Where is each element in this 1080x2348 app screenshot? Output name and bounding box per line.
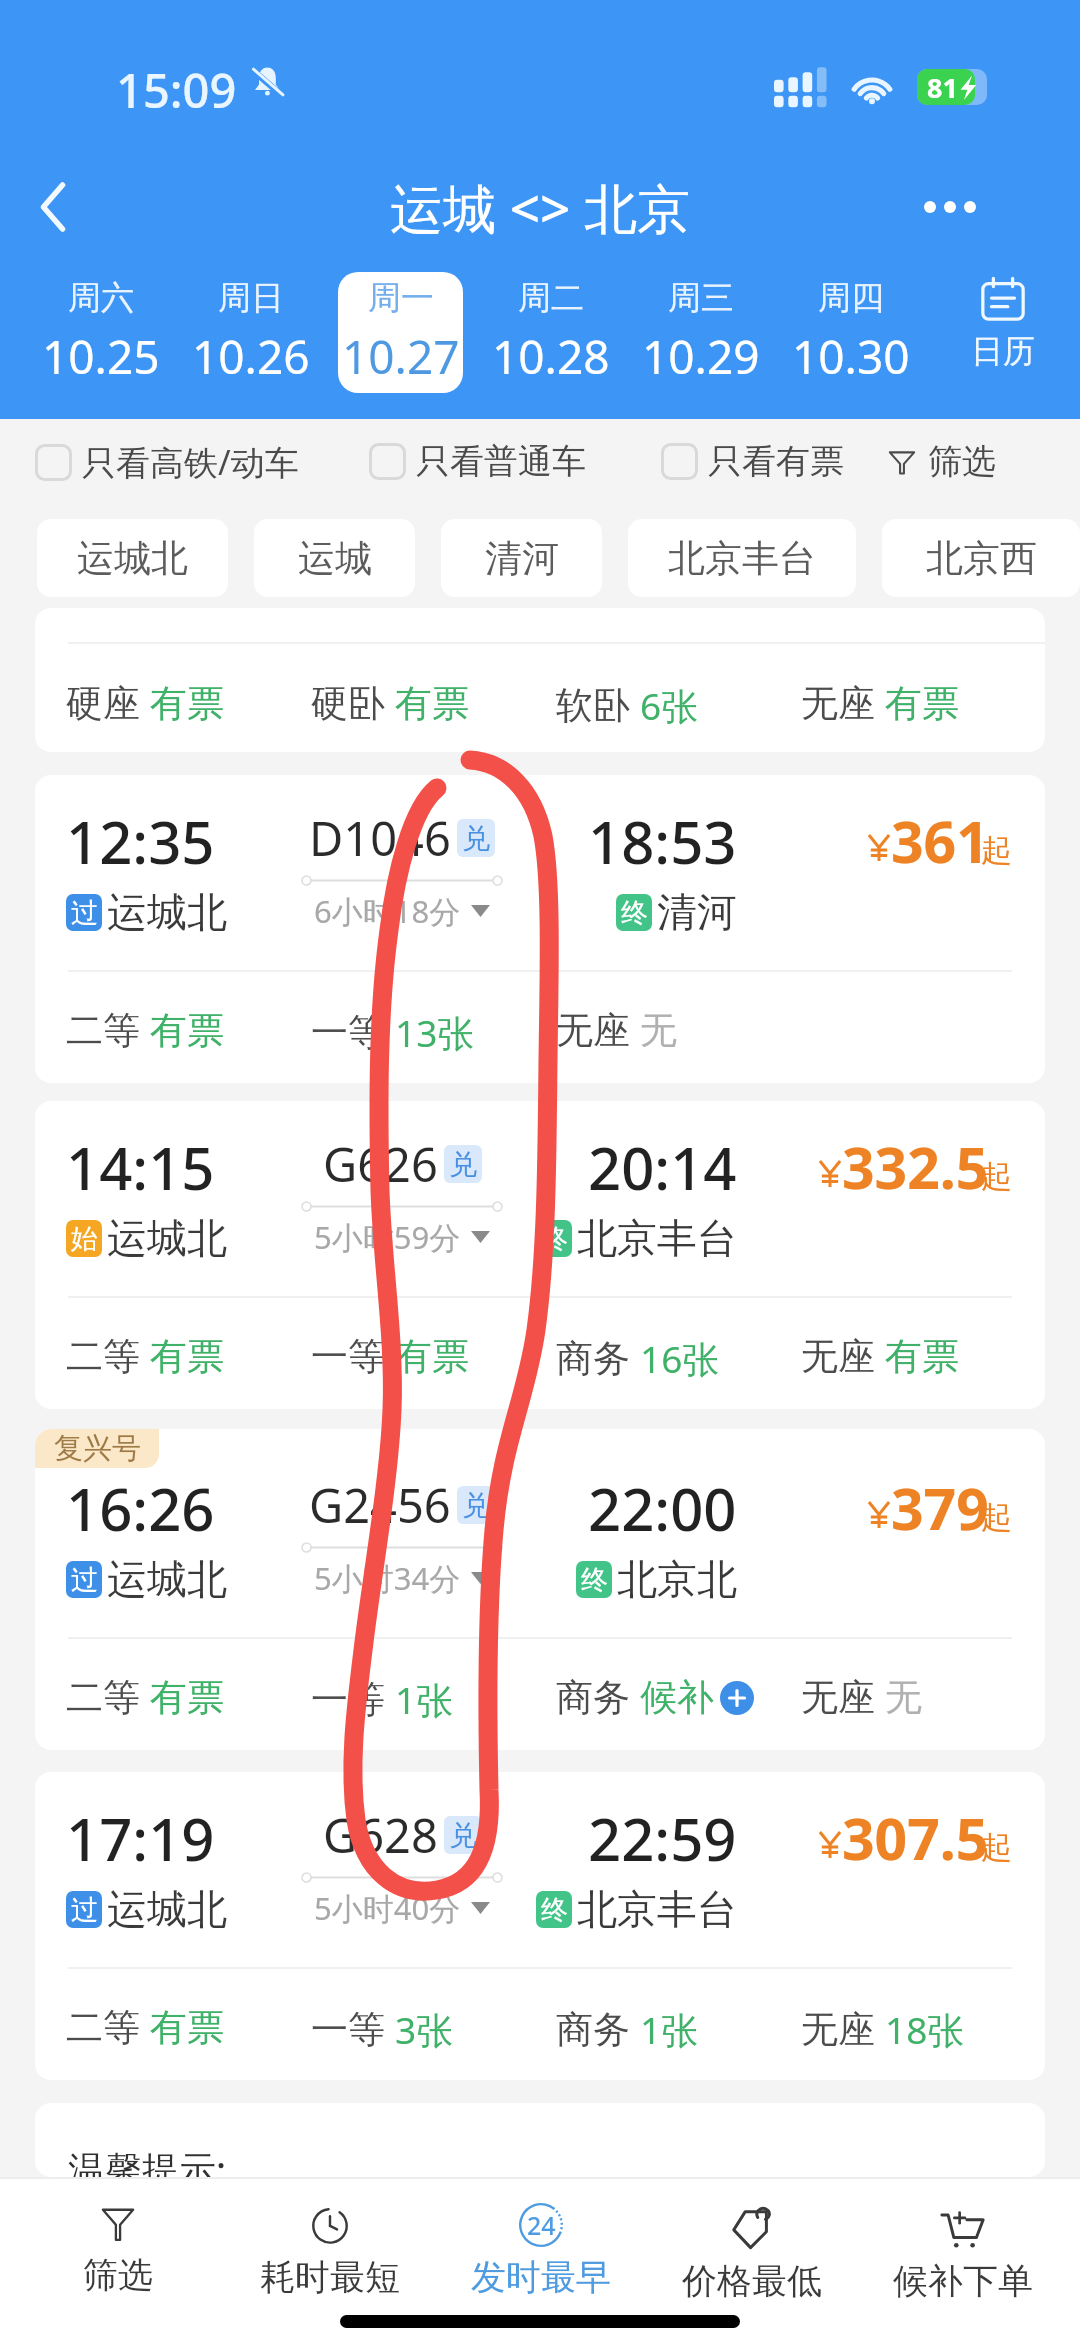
staticText: 起 [981, 831, 1012, 870]
button[interactable]: 耗时最短 [224, 2179, 435, 2303]
staticText: 候补下单 [893, 2259, 1033, 2303]
button[interactable]: 硬座 [35, 608, 1045, 752]
staticText: 无座 [801, 1333, 875, 1380]
staticText: 温馨提示: [68, 2143, 227, 2177]
button[interactable]: 周三 [638, 272, 763, 393]
staticText: 有票 [150, 1007, 224, 1054]
staticText: 终 [621, 896, 648, 930]
staticText: 运城北 [107, 1554, 227, 1604]
button[interactable]: 筛选 [886, 440, 996, 483]
staticText: 终 [541, 1222, 568, 1256]
staticText: 10.26 [192, 325, 310, 388]
staticText: 只看高铁/动车 [82, 439, 299, 485]
staticText: 周四 [818, 277, 884, 319]
button[interactable]: 周日 [188, 272, 313, 393]
staticText: 81 [927, 69, 958, 105]
staticText: 6小时18分 [314, 890, 461, 932]
staticText: 无座 [801, 2006, 875, 2053]
staticText: 清河 [657, 887, 737, 937]
button[interactable]: 12:35 [35, 775, 1045, 1083]
staticText: 发时最早 [471, 2255, 611, 2299]
staticText: 18:53 [588, 802, 737, 881]
staticText: 一等 [311, 2006, 385, 2053]
staticText: 只看普通车 [416, 440, 586, 483]
staticText: 运城 <> 北京 [390, 171, 691, 243]
staticText: 1张 [395, 1674, 454, 1725]
staticText: 15:09 [116, 58, 237, 122]
button[interactable]: 只看普通车 [369, 440, 586, 483]
staticText: 只看有票 [708, 440, 844, 483]
button[interactable]: 北京丰台 [628, 519, 856, 597]
staticText: 12:35 [66, 802, 215, 881]
staticText: 商务 [556, 1335, 630, 1382]
button[interactable]: 复兴号 [35, 1429, 1045, 1750]
button[interactable]: 周一 [338, 272, 463, 393]
staticText: 清河 [485, 535, 559, 582]
staticText: 兑 [449, 1147, 477, 1182]
staticText: 3张 [395, 2004, 454, 2055]
staticText: 无 [885, 1674, 922, 1721]
staticText: 361 [891, 802, 989, 880]
staticText: 起 [981, 1157, 1012, 1196]
staticText: 14:15 [66, 1128, 215, 1207]
staticText: 10.28 [492, 325, 610, 388]
staticText: 过 [71, 1893, 98, 1927]
staticText: 一等 [311, 1009, 385, 1056]
staticText: 有票 [885, 1333, 959, 1380]
staticText: 北京丰台 [668, 535, 816, 582]
staticText: 13张 [395, 1007, 475, 1058]
staticText: 有票 [150, 2004, 224, 2051]
staticText: 无座 [801, 680, 875, 727]
button[interactable]: 17:19 [35, 1772, 1045, 2080]
button[interactable]: 运城 [254, 519, 415, 597]
button[interactable]: 返回 [12, 164, 98, 250]
button[interactable]: 清河 [441, 519, 602, 597]
staticText: 兑 [462, 821, 490, 856]
button[interactable]: 北京西 [882, 519, 1080, 597]
staticText: 332.5 [842, 1128, 989, 1206]
button[interactable]: 周六 [38, 272, 163, 393]
staticText: 二等 [66, 1007, 140, 1054]
staticText: 16张 [640, 1333, 720, 1384]
staticText: G628 [323, 1803, 438, 1867]
staticText: 周二 [518, 277, 584, 319]
staticText: 运城北 [107, 1884, 227, 1934]
staticText: 1张 [640, 2004, 699, 2055]
button[interactable]: 更多 [905, 162, 995, 252]
staticText: 起 [981, 1498, 1012, 1537]
staticText: 二等 [66, 1674, 140, 1721]
staticText: 有票 [395, 1333, 469, 1380]
button[interactable]: 候补下单 [857, 2179, 1068, 2303]
button[interactable]: 价格最低 [646, 2179, 857, 2303]
staticText: 5小时34分 [314, 1557, 461, 1599]
staticText: 16:26 [66, 1469, 215, 1548]
staticText: 过 [71, 896, 98, 930]
staticText: 软卧 [556, 682, 630, 729]
staticText: 5小时59分 [314, 1216, 461, 1258]
staticText: 有票 [150, 1674, 224, 1721]
button[interactable]: 周二 [488, 272, 613, 393]
button[interactable]: 日历 [925, 272, 1080, 419]
staticText: 379 [891, 1469, 989, 1547]
button[interactable]: 周四 [788, 272, 913, 393]
button[interactable]: 只看高铁/动车 [35, 439, 299, 485]
staticText: 无座 [801, 1674, 875, 1721]
staticText: 有票 [885, 680, 959, 727]
staticText: 22:59 [588, 1799, 737, 1878]
staticText: 二等 [66, 2004, 140, 2051]
button[interactable]: 只看有票 [661, 440, 844, 483]
staticText: 耗时最短 [260, 2255, 400, 2299]
button[interactable]: 筛选 [12, 2179, 224, 2303]
staticText: 周三 [668, 277, 734, 319]
button[interactable]: 14:15 [35, 1101, 1045, 1409]
staticText: 兑 [449, 1818, 477, 1853]
staticText: D1046 [309, 806, 451, 870]
staticText: 起 [981, 1828, 1012, 1867]
staticText: 周一 [368, 277, 434, 319]
staticText: 5小时40分 [314, 1887, 461, 1929]
button[interactable]: 运城北 [37, 519, 228, 597]
staticText: 6张 [640, 680, 699, 731]
button[interactable]: 24 [435, 2179, 646, 2303]
staticText: 有票 [150, 1333, 224, 1380]
staticText: 10.30 [792, 325, 910, 388]
